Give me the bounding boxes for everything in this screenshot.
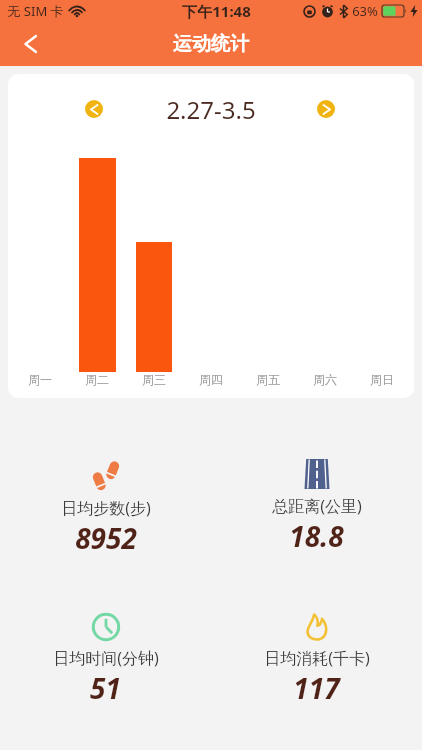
staticText: 117 xyxy=(293,669,340,707)
staticText: 63% xyxy=(352,2,378,20)
button[interactable]: 日均步数(步) xyxy=(0,458,211,557)
staticText: 8952 xyxy=(75,519,137,557)
staticText: 下午11:48 xyxy=(182,1,251,21)
button[interactable]: 日均时间(分钟) xyxy=(0,612,211,707)
staticText: 总距离(公里) xyxy=(272,495,362,517)
staticText: 周日 xyxy=(370,372,394,387)
staticText: 周三 xyxy=(142,372,166,387)
staticText: 周二 xyxy=(85,372,109,387)
staticText: 周五 xyxy=(256,372,280,387)
button[interactable] xyxy=(14,22,46,66)
staticText: 日均时间(分钟) xyxy=(53,647,159,669)
staticText: 无 SIM 卡 xyxy=(7,2,64,20)
staticText: 周一 xyxy=(28,372,52,387)
button[interactable] xyxy=(85,100,103,118)
staticText: 周六 xyxy=(313,372,337,387)
button[interactable]: 总距离(公里) xyxy=(211,458,422,555)
staticText: 日均消耗(千卡) xyxy=(264,647,370,669)
staticText: 运动统计 xyxy=(173,32,249,56)
staticText: 日均步数(步) xyxy=(61,497,151,519)
staticText: 18.8 xyxy=(289,517,344,555)
button[interactable] xyxy=(317,100,335,118)
button[interactable]: 日均消耗(千卡) xyxy=(211,612,422,707)
staticText: 2.27-3.5 xyxy=(166,93,256,126)
staticText: 周四 xyxy=(199,372,223,387)
staticText: 51 xyxy=(90,669,121,707)
